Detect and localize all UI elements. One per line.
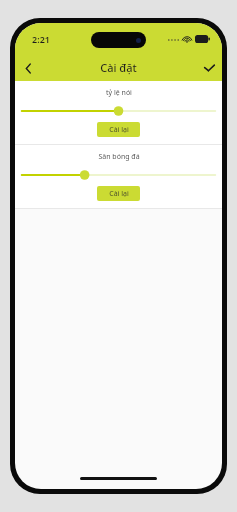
- button[interactable]: Cài lại: [97, 122, 140, 137]
- staticText: Sân bóng đá: [98, 152, 140, 162]
- button[interactable]: Sân bóng đá: [21, 169, 216, 181]
- staticText: tỷ lệ nói: [106, 88, 132, 98]
- button[interactable]: Cài lại: [97, 186, 140, 201]
- staticText: 2:21: [32, 33, 50, 45]
- staticText: Cài đặt: [100, 60, 137, 75]
- button[interactable]: tỷ lệ nói: [21, 105, 216, 117]
- button[interactable]: Back: [15, 55, 41, 81]
- staticText: Cài lại: [109, 189, 129, 199]
- staticText: Cài lại: [109, 125, 129, 135]
- button[interactable]: Confirm: [196, 55, 222, 81]
